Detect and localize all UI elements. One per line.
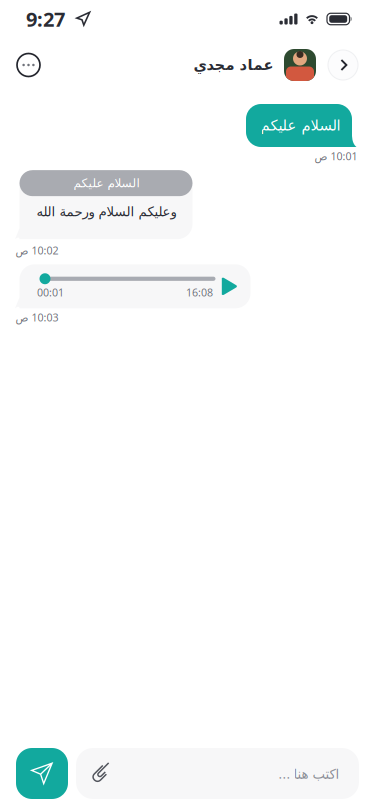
staticText: 10:03 ص	[15, 310, 58, 324]
button[interactable]: Send	[16, 748, 68, 799]
staticText: السلام عليكم	[260, 117, 340, 134]
button[interactable]: Play voice message	[221, 277, 238, 295]
staticText: 9:27	[26, 6, 65, 32]
button[interactable]: اكتب هنا ...	[76, 748, 359, 799]
staticText: 10:01 ص	[314, 149, 357, 163]
button[interactable]: عماد مجدي	[193, 43, 316, 87]
staticText: وعليكم السلام ورحمة الله	[36, 204, 176, 219]
staticText: 16:08	[186, 285, 213, 299]
staticText: اكتب هنا ...	[278, 765, 339, 782]
staticText: 10:02 ص	[15, 243, 58, 257]
staticText: 00:01	[37, 285, 64, 299]
button[interactable]: More options	[12, 48, 45, 81]
button[interactable]: Open profile	[328, 50, 358, 80]
staticText: عماد مجدي	[193, 57, 273, 73]
staticText: السلام عليكم	[73, 176, 139, 190]
